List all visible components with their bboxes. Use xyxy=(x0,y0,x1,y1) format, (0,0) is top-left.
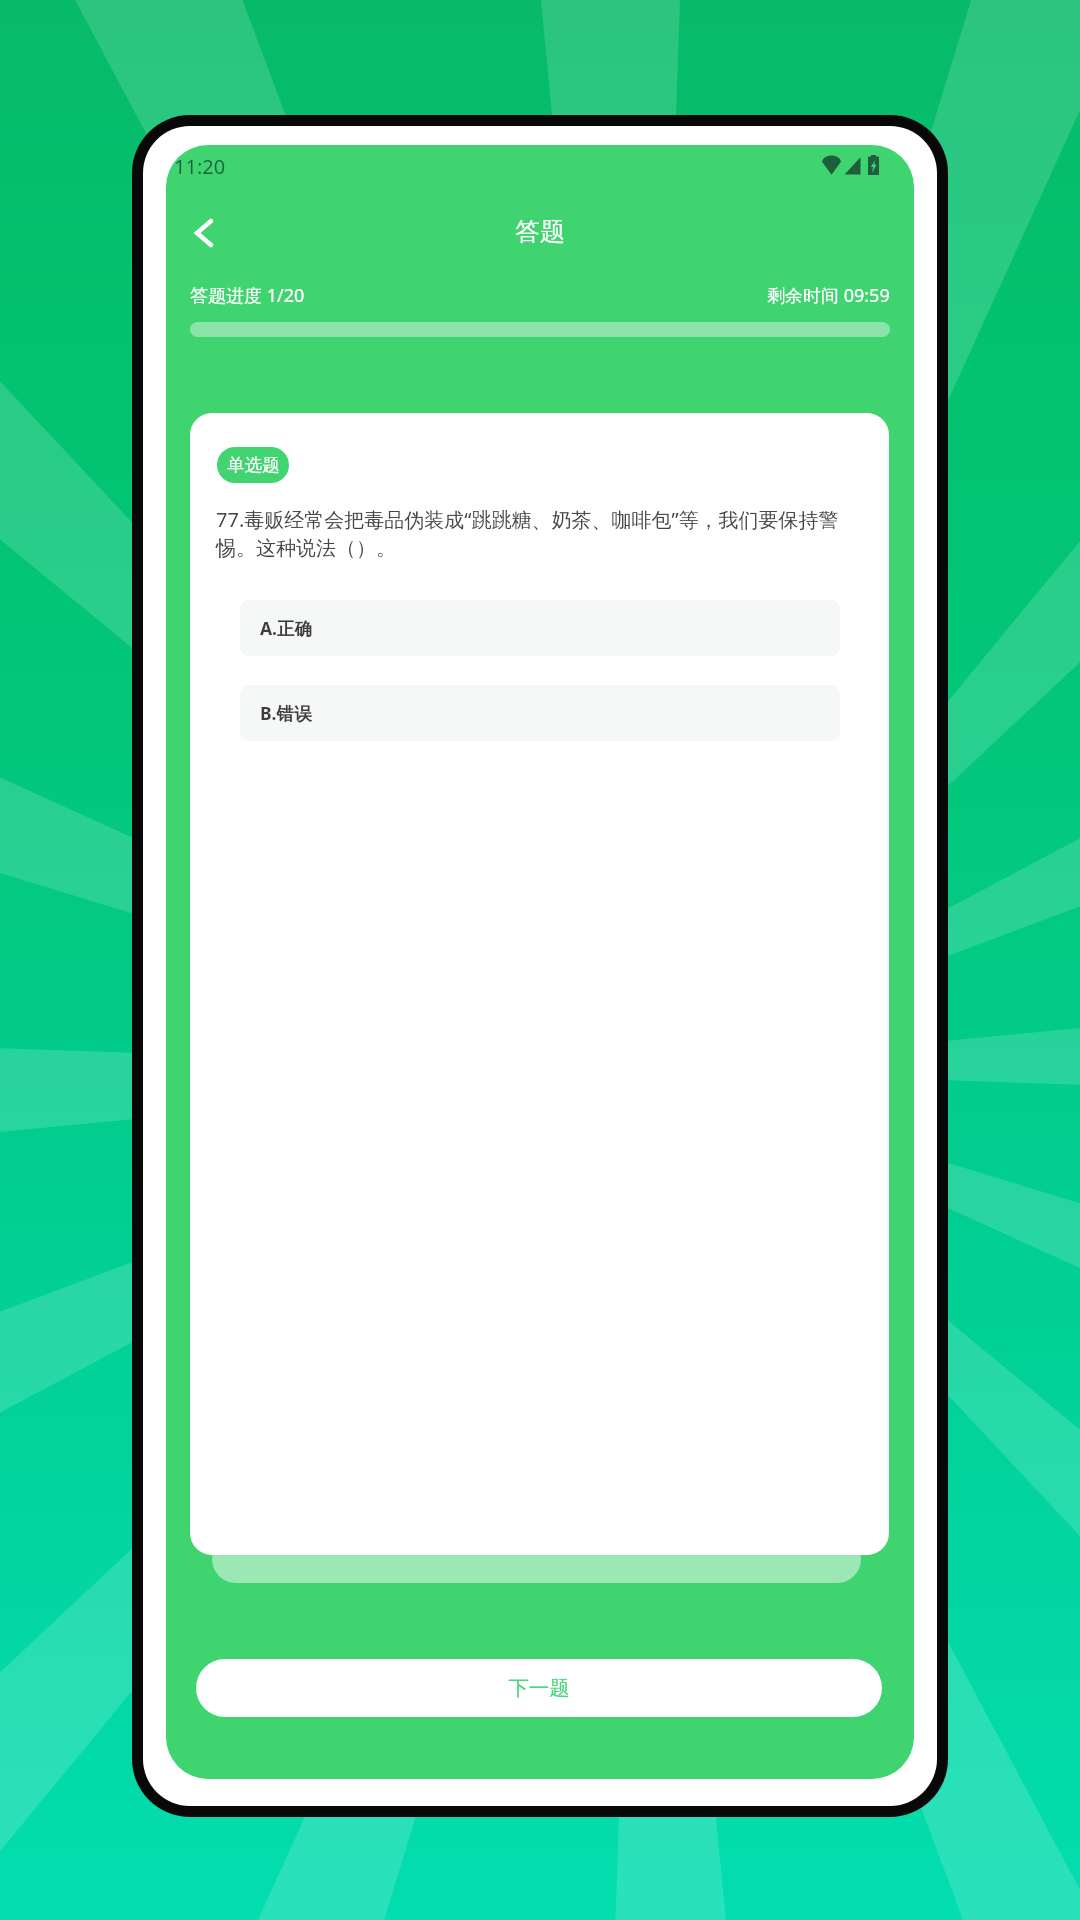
staticText: 77.毒贩经常会把毒品伪装成“跳跳糖、奶茶、咖啡包”等，我们要保持警惕。这种说法… xyxy=(216,506,864,561)
button[interactable]: B.错误 xyxy=(240,685,840,741)
staticText: A.正确 xyxy=(260,616,313,640)
button[interactable]: A.正确 xyxy=(240,600,840,656)
staticText: 答题 xyxy=(515,216,565,247)
staticText: 下一题 xyxy=(508,1675,570,1701)
staticText: 剩余时间 09:59 xyxy=(767,283,890,308)
staticText: 答题进度 1/20 xyxy=(190,283,305,308)
staticText: 单选题 xyxy=(227,454,280,476)
staticText: B.错误 xyxy=(260,701,312,725)
staticText: 11:20 xyxy=(174,153,226,180)
button[interactable]: 单选题 xyxy=(217,447,289,483)
button[interactable]: 下一题 xyxy=(196,1659,882,1717)
button[interactable]: Back xyxy=(176,203,232,263)
